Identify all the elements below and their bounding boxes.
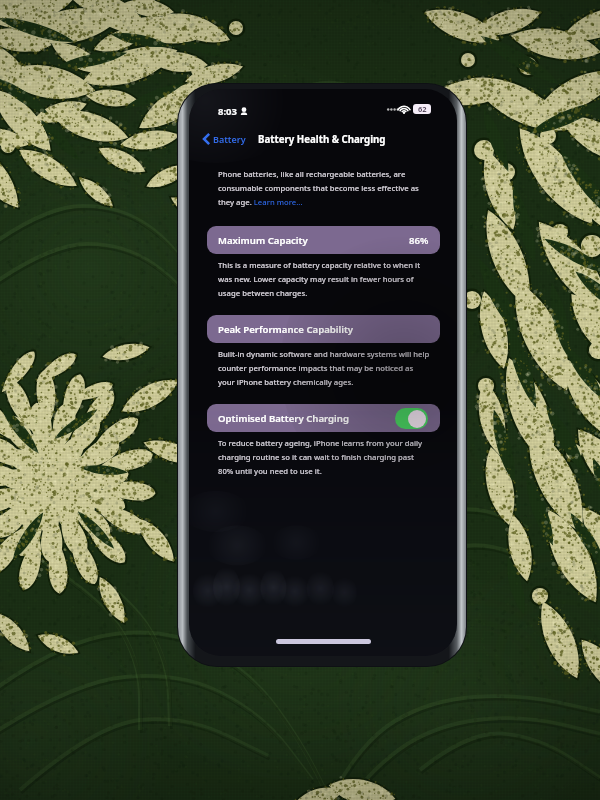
staticText: Peak Performance Capability	[218, 323, 354, 336]
staticText: To reduce battery ageing, iPhone learns …	[218, 438, 431, 476]
staticText: Optimised Battery Charging	[218, 412, 349, 425]
button[interactable]: Back to Battery	[201, 131, 248, 147]
staticText: Battery Health & Charging	[258, 133, 386, 146]
button[interactable]: Peak Performance Capability	[207, 315, 440, 343]
staticText: 62	[418, 104, 427, 114]
button[interactable]: Learn more about battery health	[249, 196, 293, 207]
button[interactable]: Optimised Battery Charging	[207, 404, 440, 432]
staticText: Built-in dynamic software and hardware s…	[218, 349, 431, 387]
staticText: Phone batteries, like all rechargeable b…	[218, 169, 431, 207]
staticText: This is a measure of battery capacity re…	[218, 260, 431, 298]
staticText: Maximum Capacity	[218, 234, 308, 247]
staticText: Battery	[213, 133, 246, 145]
button[interactable]: Maximum Capacity	[207, 226, 440, 254]
button[interactable]: Optimised Battery Charging toggle	[395, 408, 428, 429]
staticText: 86%	[409, 234, 429, 247]
staticText: 8:03	[218, 105, 237, 118]
button[interactable]: Home indicator	[276, 639, 371, 644]
